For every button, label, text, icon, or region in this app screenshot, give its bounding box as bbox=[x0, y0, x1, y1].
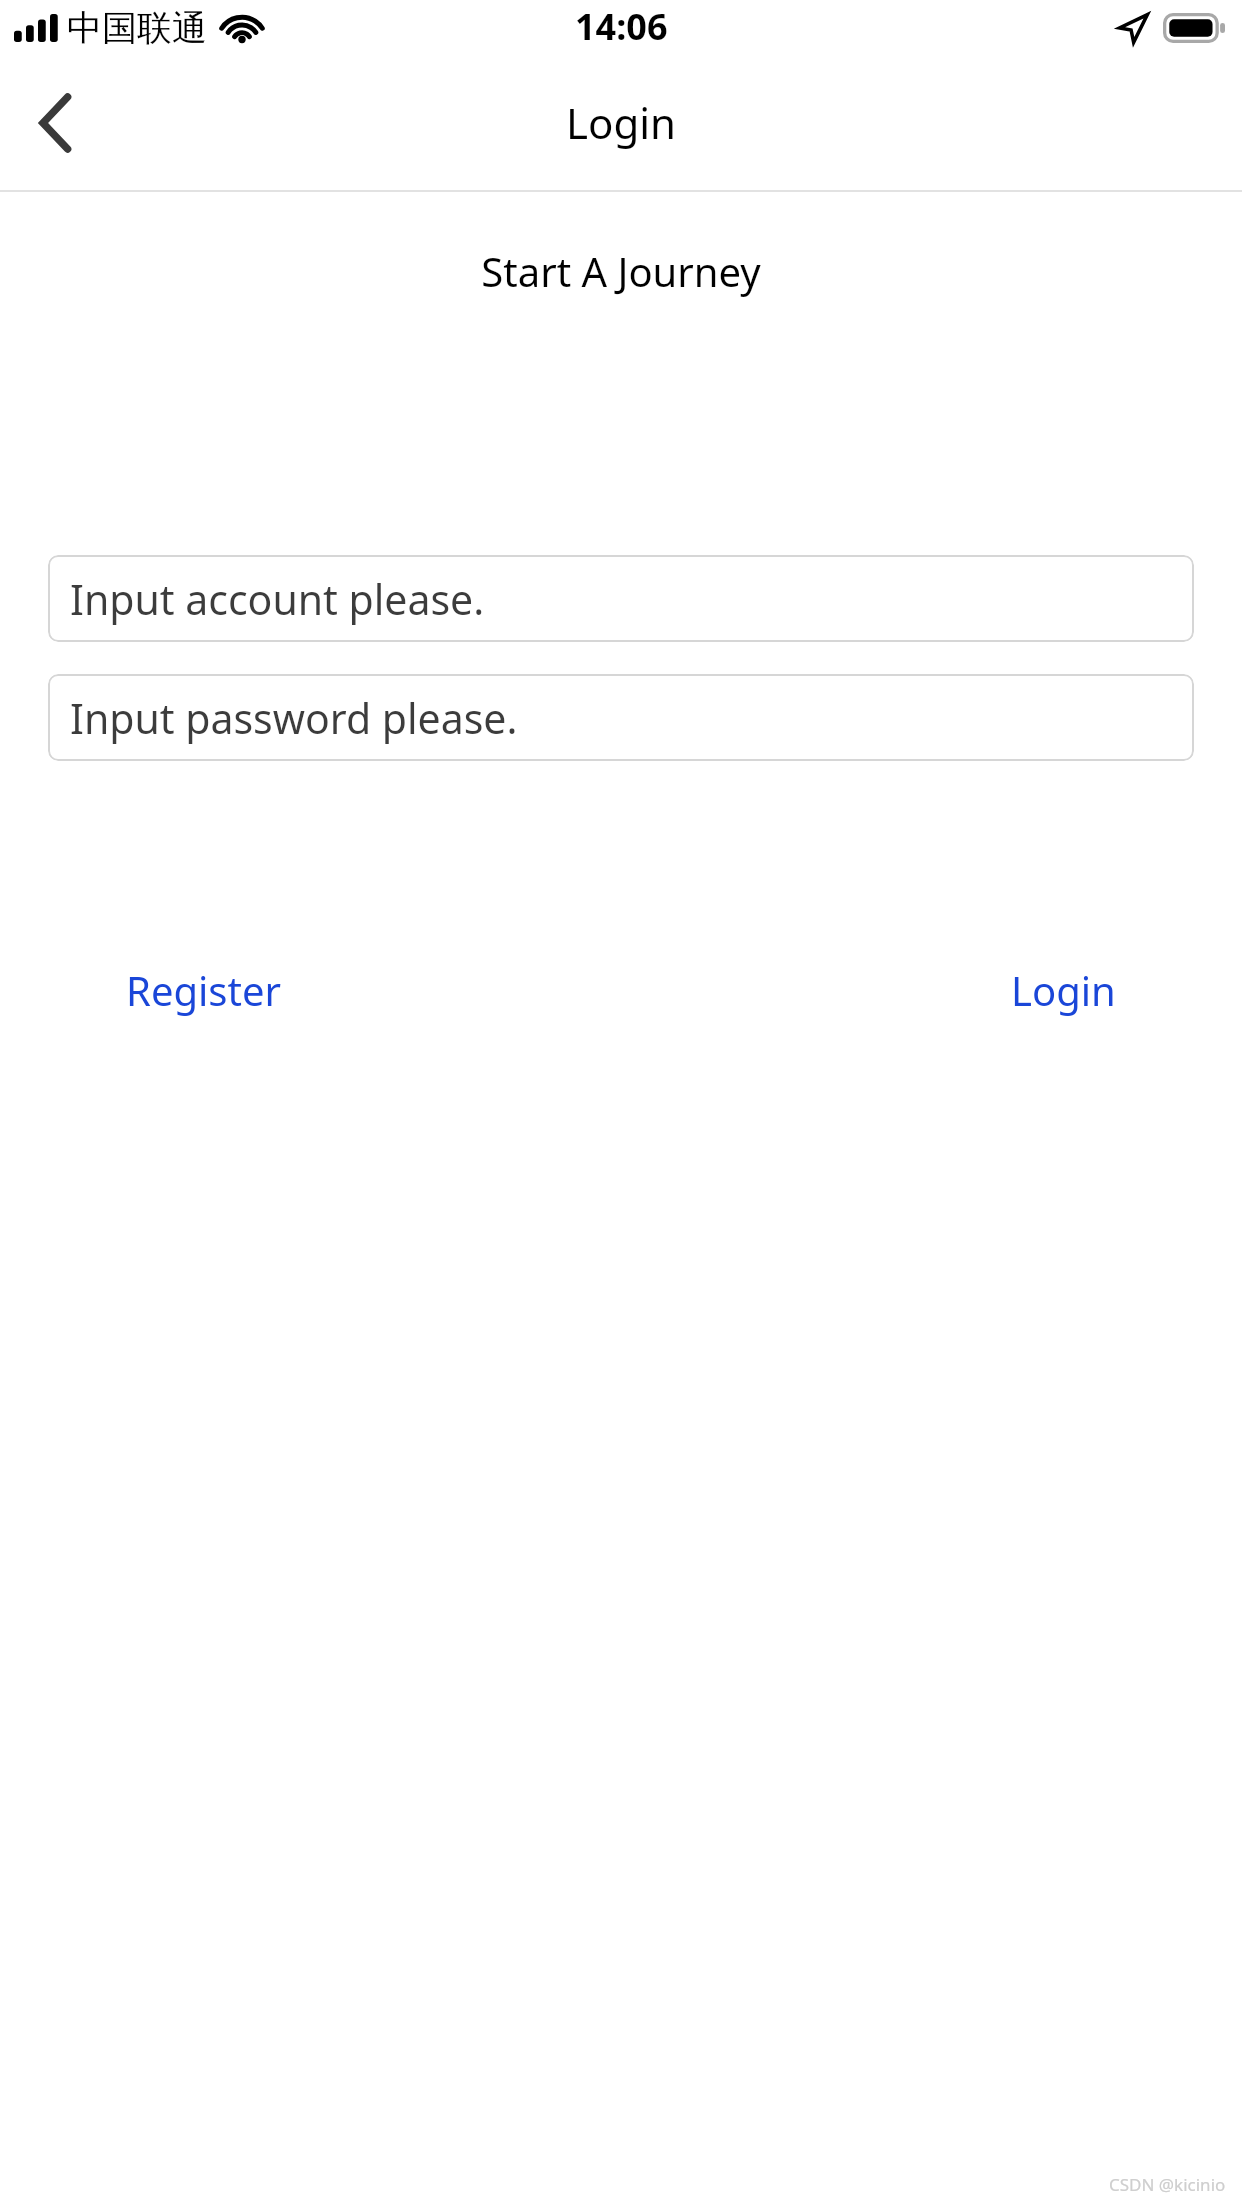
staticText: Login bbox=[566, 94, 677, 151]
staticText: Input account please. bbox=[70, 571, 485, 627]
button[interactable]: Back bbox=[0, 68, 110, 178]
staticText: Input password please. bbox=[70, 690, 518, 746]
button[interactable]: Input account please. bbox=[48, 555, 1194, 642]
button[interactable]: Login bbox=[995, 953, 1132, 1027]
staticText: Register bbox=[126, 963, 282, 1017]
staticText: 中国联通 bbox=[67, 6, 207, 50]
staticText: Login bbox=[1011, 963, 1116, 1017]
button[interactable]: Register bbox=[110, 953, 298, 1027]
button[interactable]: Input password please. bbox=[48, 674, 1194, 761]
staticText: Start A Journey bbox=[0, 244, 1242, 298]
staticText: CSDN @kicinio bbox=[1109, 2173, 1226, 2196]
staticText: 14:06 bbox=[575, 2, 668, 51]
